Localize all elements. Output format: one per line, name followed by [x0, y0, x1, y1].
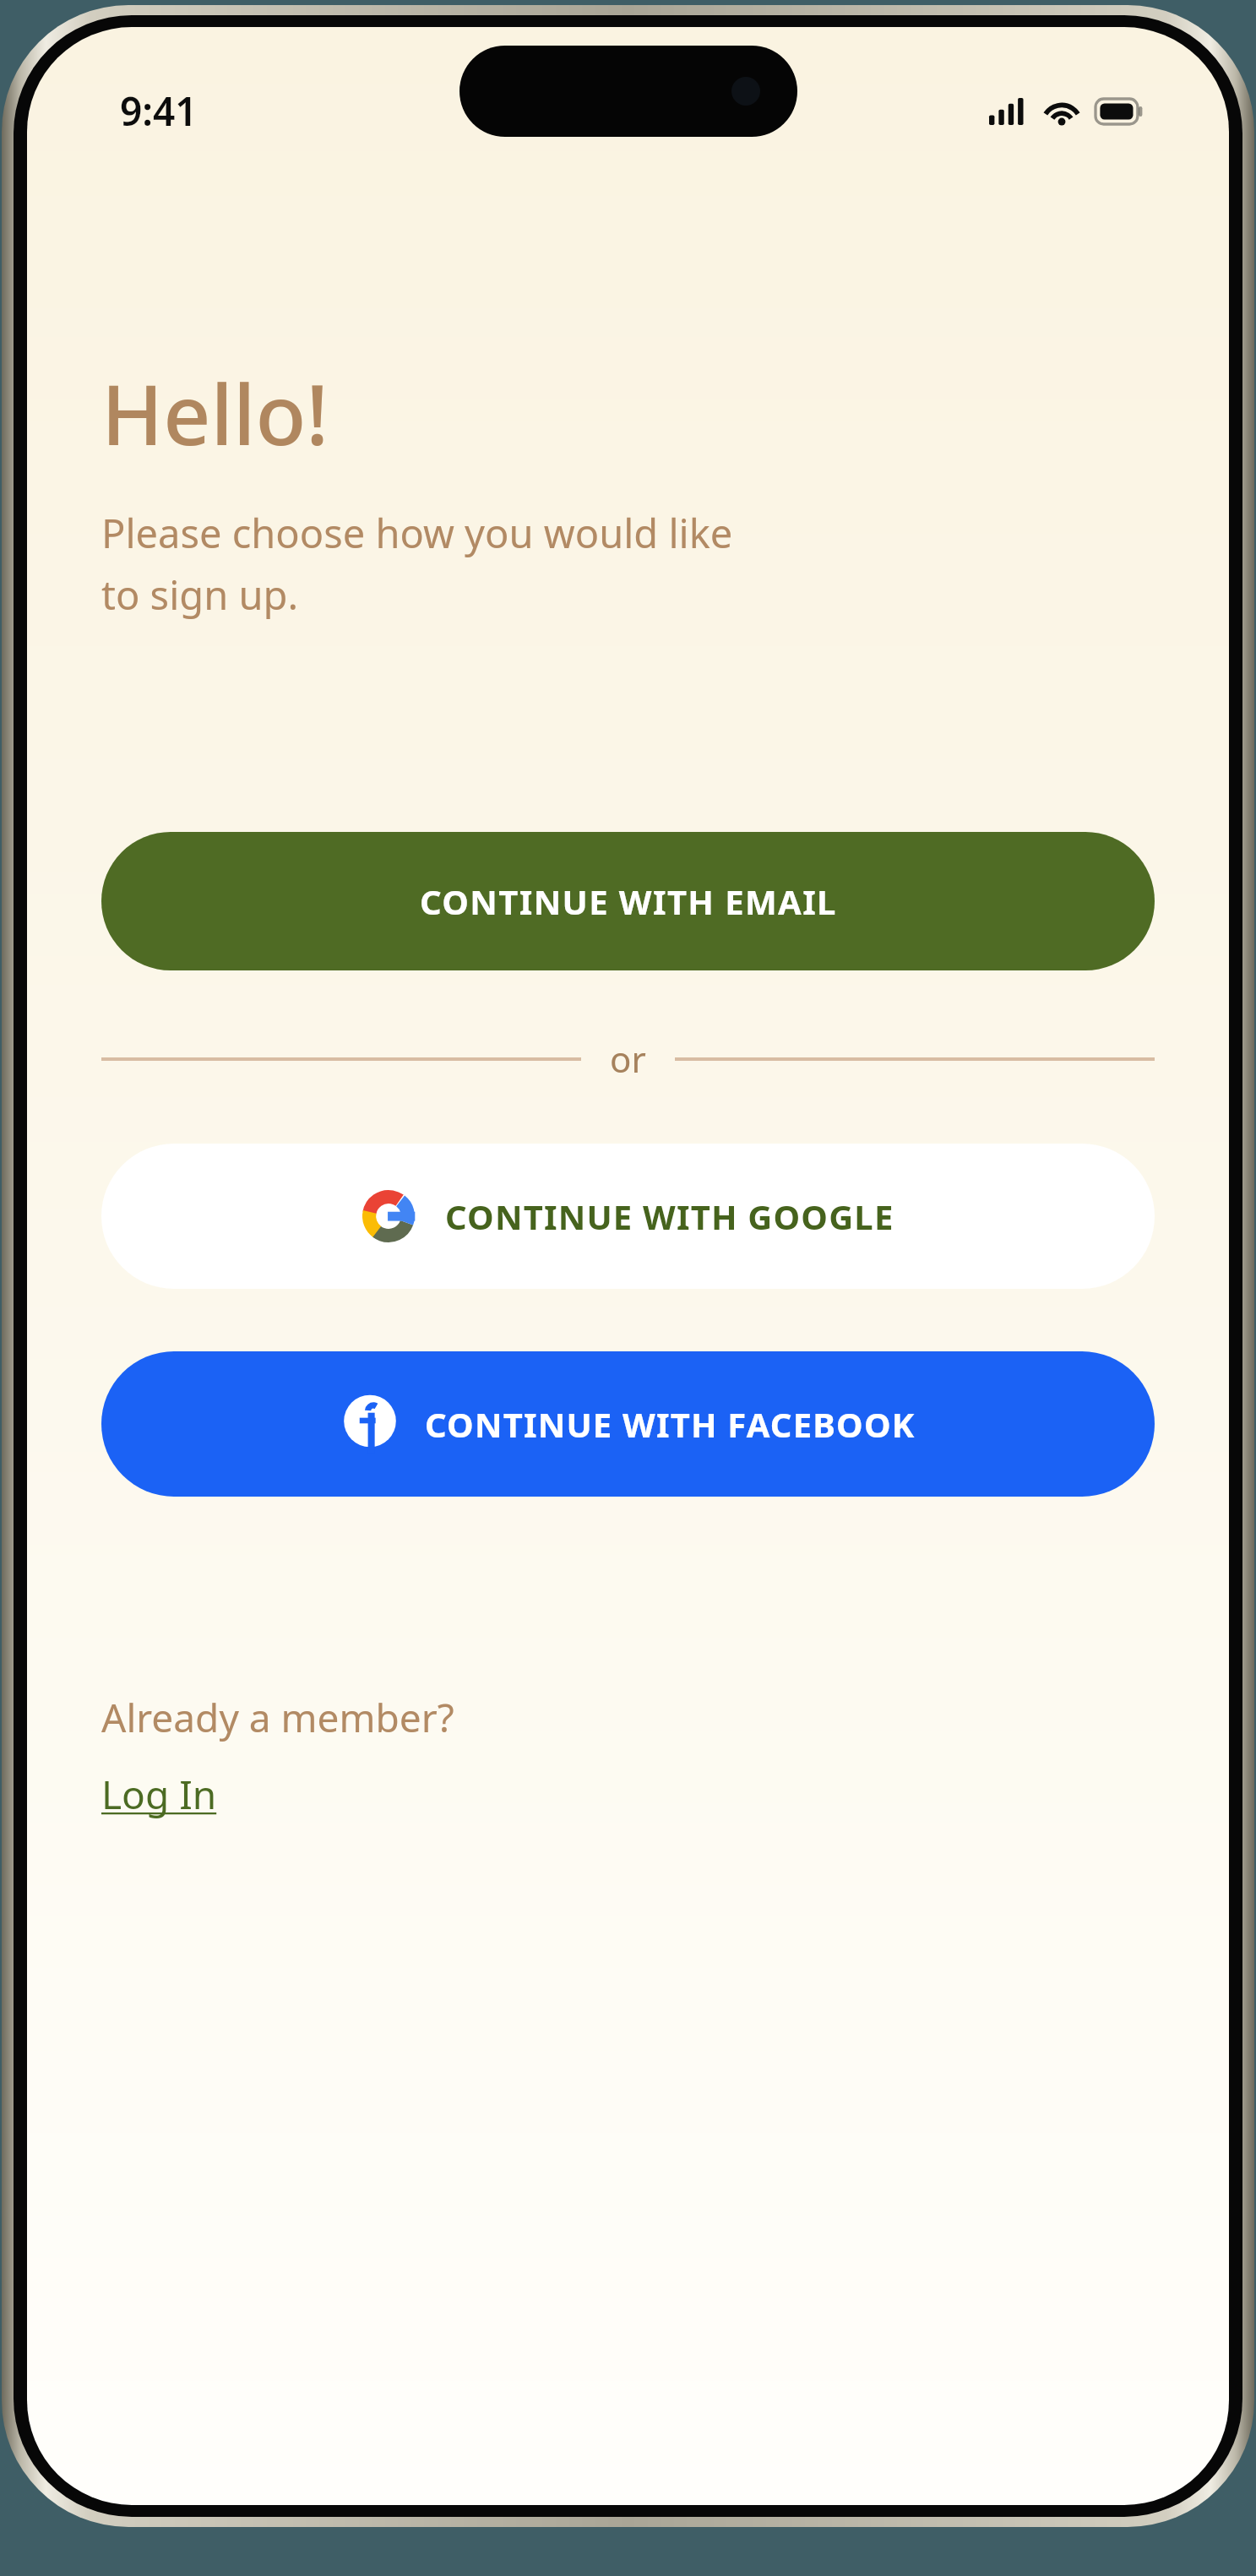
staticText: CONTINUE WITH EMAIL: [420, 878, 837, 924]
staticText: or: [610, 1035, 646, 1083]
other: Facebook: [340, 1394, 400, 1454]
button[interactable]: Continue with Facebook: [101, 1351, 1155, 1497]
staticText: Log In: [101, 1768, 217, 1821]
staticText: 9:41: [120, 84, 198, 138]
button[interactable]: Log In: [101, 1768, 217, 1821]
staticText: Please choose how you would like to sign…: [101, 506, 733, 621]
staticText: Already a member?: [101, 1691, 454, 1744]
staticText: Hello!: [101, 356, 329, 469]
button[interactable]: Continue with Google: [101, 1144, 1155, 1289]
staticText: CONTINUE WITH FACEBOOK: [425, 1401, 916, 1447]
staticText: CONTINUE WITH GOOGLE: [445, 1193, 894, 1239]
other: Google: [362, 1190, 415, 1242]
button[interactable]: Continue with email: [101, 832, 1155, 970]
